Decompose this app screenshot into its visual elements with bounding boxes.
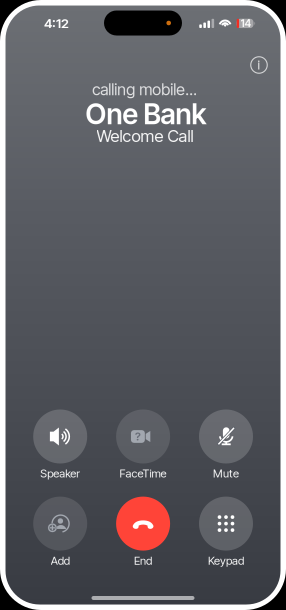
staticText: Mute: [213, 467, 239, 480]
button[interactable]: Call info: [244, 50, 274, 80]
staticText: FaceTime: [120, 467, 167, 480]
staticText: i: [257, 57, 260, 73]
button[interactable]: Add: [20, 497, 100, 571]
button[interactable]: Speaker: [20, 409, 100, 483]
staticText: calling mobile...: [92, 80, 197, 99]
staticText: Welcome Call: [96, 126, 193, 146]
staticText: 4:12: [44, 15, 69, 31]
staticText: Keypad: [208, 554, 244, 567]
staticText: 14: [240, 17, 251, 30]
staticText: Speaker: [40, 467, 80, 480]
staticText: ?: [135, 429, 141, 443]
staticText: Add: [51, 554, 70, 567]
button[interactable]: Mute: [186, 409, 266, 483]
staticText: End: [134, 554, 152, 567]
button[interactable]: End: [103, 497, 183, 571]
button[interactable]: Keypad: [186, 497, 266, 571]
staticText: One Bank: [85, 97, 206, 131]
button[interactable]: ?: [103, 409, 183, 483]
